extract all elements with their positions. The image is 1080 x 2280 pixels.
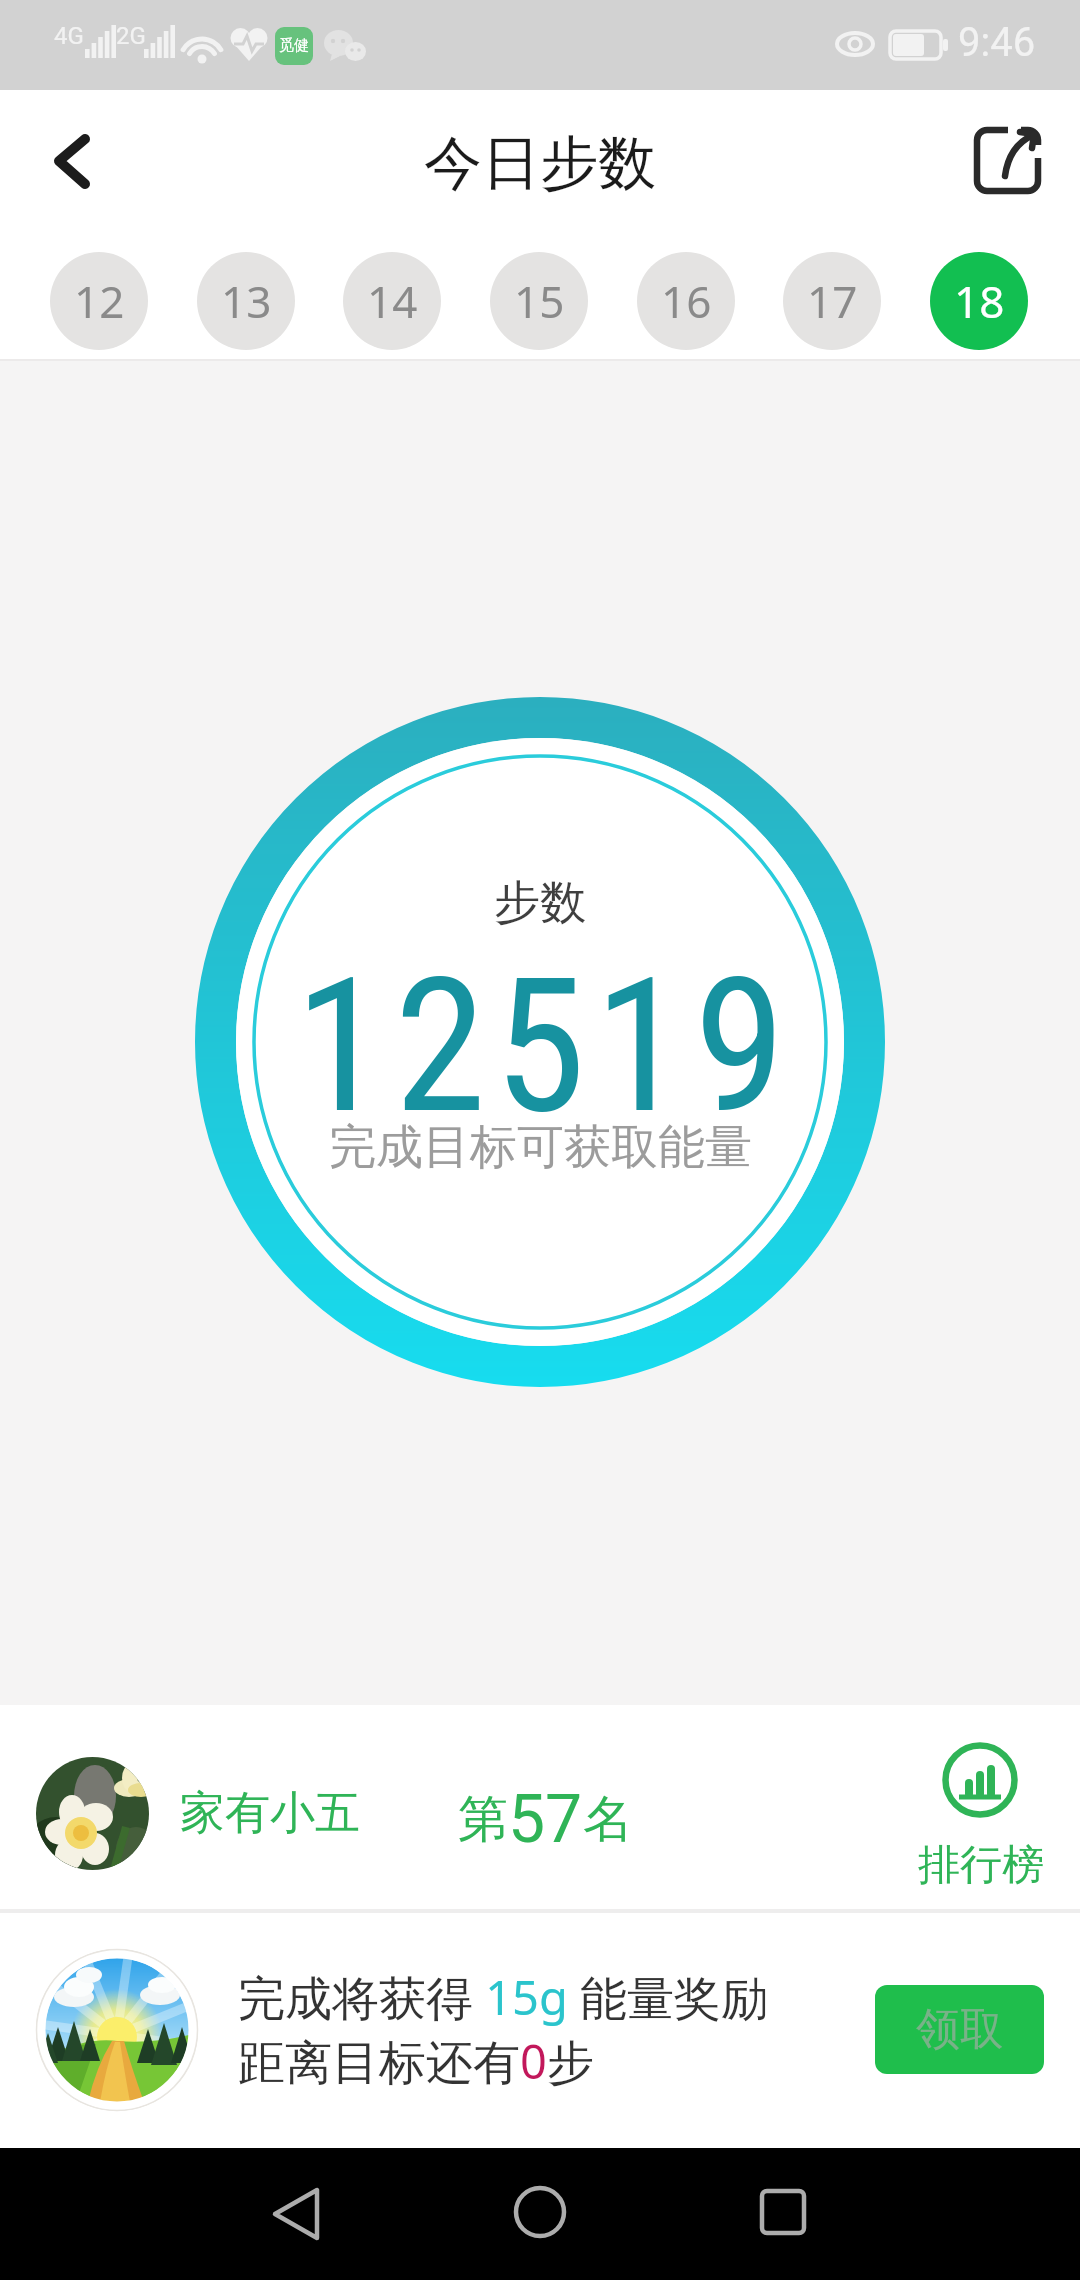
staticText: 完成目标可获取能量	[329, 1118, 752, 1177]
staticText: 领取	[916, 2002, 1004, 2057]
staticText: 家有小五	[180, 1785, 360, 1842]
button[interactable]: 13	[197, 252, 295, 350]
staticText: 4G	[54, 22, 84, 50]
button[interactable]	[480, 2154, 600, 2274]
button[interactable]: 14	[343, 252, 441, 350]
staticText: 排行榜	[918, 1839, 1044, 1892]
staticText: 名	[583, 1788, 633, 1851]
button[interactable]: 17	[783, 252, 881, 350]
staticText: 13	[221, 271, 272, 331]
staticText: 16	[661, 271, 712, 331]
staticText: 57	[508, 1781, 583, 1858]
button[interactable]	[723, 2154, 843, 2274]
button[interactable]: 领取	[875, 1985, 1044, 2074]
button[interactable]: 16	[637, 252, 735, 350]
staticText: 12519	[294, 937, 794, 1155]
staticText: 18	[954, 271, 1005, 331]
button[interactable]: 12	[50, 252, 148, 350]
staticText: 2G	[116, 22, 146, 50]
button[interactable]: 家有小五	[0, 1705, 1080, 1909]
button[interactable]: 18	[930, 252, 1028, 350]
staticText: 12	[74, 271, 125, 331]
staticText: 完成将获得 15g 能量奖励	[238, 1965, 769, 2029]
staticText: 第	[458, 1788, 508, 1851]
staticText: 步数	[494, 874, 586, 932]
button[interactable]	[30, 116, 120, 206]
staticText: 距离目标还有0步	[238, 2029, 594, 2093]
staticText: 15	[514, 271, 565, 331]
button[interactable]	[955, 110, 1060, 215]
staticText: 9:46	[958, 19, 1036, 66]
staticText: 17	[807, 271, 858, 331]
button[interactable]	[237, 2154, 357, 2274]
staticText: 14	[367, 271, 418, 331]
staticText: 今日步数	[424, 127, 656, 200]
button[interactable]: 15	[490, 252, 588, 350]
staticText: 觅健	[279, 36, 309, 55]
button[interactable]: 排行榜	[900, 1735, 1065, 1900]
